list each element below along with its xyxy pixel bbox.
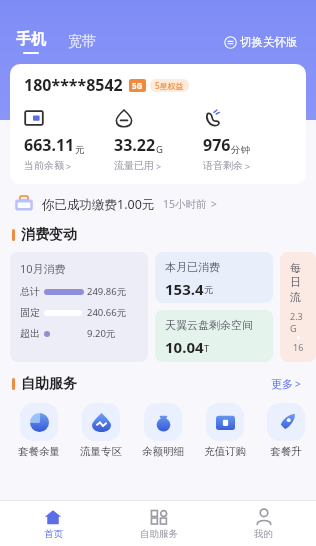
- staticText: >: [211, 197, 217, 211]
- button[interactable]: 180****8542: [10, 64, 306, 184]
- staticText: 10.04: [165, 337, 204, 354]
- staticText: 固定: [20, 306, 40, 319]
- staticText: 当前余额: [24, 159, 64, 172]
- staticText: 自助服务: [140, 528, 178, 540]
- staticText: 976: [203, 134, 231, 156]
- staticText: 你已成功缴费1.00元: [42, 196, 155, 213]
- staticText: 套餐余量: [18, 445, 60, 458]
- button[interactable]: 我的: [211, 501, 316, 546]
- button[interactable]: 33.22: [114, 108, 203, 172]
- button[interactable]: 流量专区: [70, 400, 132, 461]
- staticText: 2.3G: [290, 310, 306, 334]
- staticText: 240.66元: [87, 306, 127, 319]
- staticText: 首页: [44, 528, 63, 540]
- staticText: 153.4: [165, 279, 204, 295]
- button[interactable]: 天翼云盘剩余空间: [155, 310, 273, 362]
- button[interactable]: 余额明细: [132, 400, 194, 461]
- staticText: 更多: [271, 377, 293, 391]
- button[interactable]: 切换关怀版: [220, 31, 302, 53]
- staticText: >: [156, 160, 162, 172]
- staticText: 切换关怀版: [240, 35, 298, 49]
- staticText: 本月已消费: [165, 260, 220, 274]
- staticText: 5G: [132, 80, 143, 91]
- staticText: 249.86元: [87, 285, 127, 298]
- staticText: 语音剩余: [203, 159, 243, 172]
- button[interactable]: 自助服务: [106, 501, 211, 546]
- staticText: 16: [293, 341, 304, 353]
- staticText: T: [204, 342, 210, 354]
- staticText: G: [156, 143, 163, 156]
- staticText: 元: [75, 144, 85, 156]
- staticText: 流量专区: [80, 445, 122, 458]
- button[interactable]: 976: [203, 108, 292, 172]
- staticText: >: [295, 377, 301, 391]
- staticText: 5星权益: [155, 80, 184, 91]
- button[interactable]: 手机: [14, 30, 48, 54]
- staticText: 总计: [20, 285, 40, 298]
- staticText: 10月消费: [20, 261, 66, 276]
- staticText: 663.11: [24, 134, 75, 156]
- button[interactable]: 663.11: [24, 108, 114, 172]
- staticText: 手机: [16, 30, 46, 49]
- button[interactable]: 充值订购: [194, 400, 256, 461]
- button[interactable]: 每日流: [280, 252, 316, 362]
- staticText: 分钟: [231, 144, 250, 156]
- staticText: 我的: [254, 528, 273, 540]
- button[interactable]: 宽带: [66, 31, 98, 53]
- staticText: 33.22: [114, 134, 156, 156]
- button[interactable]: 本月已消费: [155, 252, 273, 303]
- button[interactable]: 套餐余量: [8, 400, 70, 461]
- staticText: 超出: [20, 327, 40, 340]
- staticText: >: [245, 160, 251, 172]
- staticText: 充值订购: [204, 445, 246, 458]
- staticText: 流量已用: [114, 159, 154, 172]
- staticText: 消费变动: [21, 226, 77, 244]
- staticText: 自助服务: [21, 375, 77, 393]
- staticText: 每日流: [290, 261, 306, 304]
- staticText: 天翼云盘剩余空间: [165, 318, 253, 332]
- staticText: 15小时前: [163, 197, 207, 211]
- staticText: 余额明细: [142, 445, 184, 458]
- button[interactable]: 套餐升: [256, 400, 316, 461]
- button[interactable]: 首页: [0, 501, 106, 546]
- staticText: 套餐升: [270, 445, 302, 458]
- button[interactable]: 你已成功缴费1.00元: [14, 194, 302, 214]
- staticText: 180****8542: [24, 74, 123, 96]
- button[interactable]: 10月消费: [10, 252, 148, 362]
- staticText: 元: [204, 284, 213, 295]
- staticText: 9.20元: [87, 327, 116, 340]
- staticText: >: [66, 160, 72, 172]
- button[interactable]: 更多: [268, 374, 304, 394]
